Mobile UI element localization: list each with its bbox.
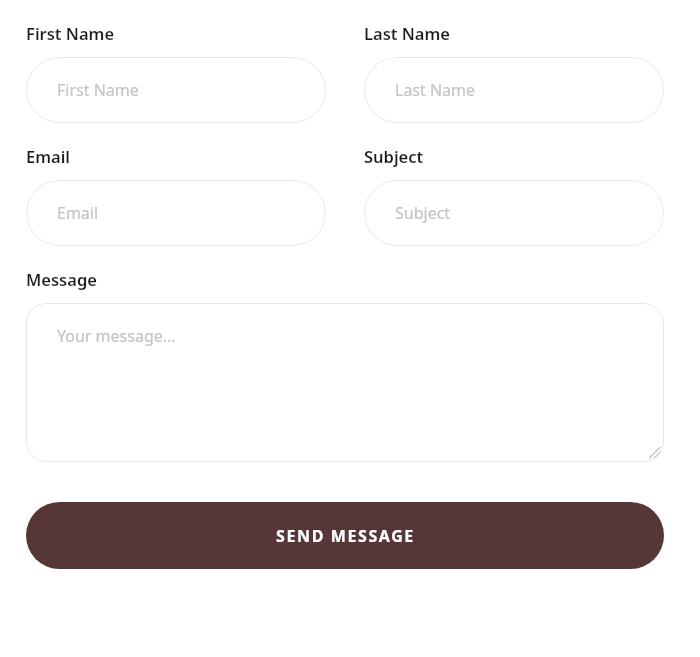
staticText: First Name bbox=[57, 79, 139, 101]
button[interactable]: Send message bbox=[26, 502, 664, 569]
staticText: Your message... bbox=[57, 325, 176, 347]
button[interactable]: Your message... bbox=[26, 303, 664, 462]
staticText: Message bbox=[26, 268, 97, 290]
staticText: Email bbox=[26, 145, 71, 167]
button[interactable]: Last Name bbox=[364, 57, 664, 123]
button[interactable]: Email bbox=[26, 180, 326, 246]
staticText: Subject bbox=[364, 145, 424, 167]
staticText: First Name bbox=[26, 22, 115, 44]
staticText: SEND MESSAGE bbox=[276, 525, 415, 547]
button[interactable]: First Name bbox=[26, 57, 326, 123]
staticText: Last Name bbox=[364, 22, 451, 44]
staticText: Email bbox=[57, 202, 99, 224]
staticText: Subject bbox=[395, 202, 451, 224]
staticText: Last Name bbox=[395, 79, 476, 101]
button[interactable]: Subject bbox=[364, 180, 664, 246]
